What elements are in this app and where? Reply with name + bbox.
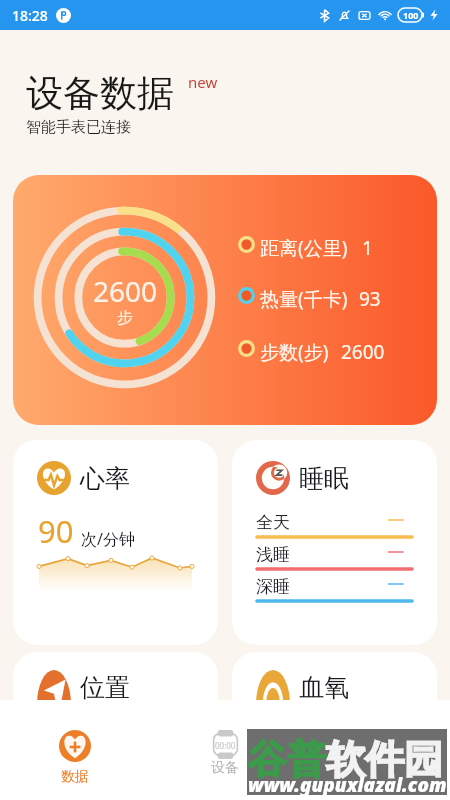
button[interactable]: Blood oxygen — [232, 652, 437, 742]
other: Profile — [359, 730, 391, 762]
staticText: 位置 — [80, 672, 130, 703]
staticText: 90 — [38, 510, 74, 552]
other: Sleep — [256, 461, 290, 495]
staticText: www.gupuxlazal.com — [248, 772, 447, 798]
button[interactable]: Device — [150, 700, 300, 800]
staticText: 2600 — [341, 339, 385, 365]
staticText: 93 — [359, 286, 381, 312]
staticText: 全天 — [256, 512, 290, 533]
staticText: 次/分钟 — [81, 528, 135, 550]
staticText: 心率 — [80, 463, 130, 494]
staticText: 步 — [117, 308, 133, 328]
staticText: 2600 — [93, 272, 158, 310]
button[interactable]: 2600 — [13, 175, 437, 425]
staticText: 热量(千卡) — [260, 286, 348, 312]
other: Device — [209, 728, 242, 761]
other: Heart rate — [37, 461, 71, 495]
staticText: 数据 — [61, 768, 89, 786]
staticText: new — [188, 72, 218, 92]
staticText: 深睡 — [256, 576, 290, 597]
staticText: 1 — [362, 235, 373, 261]
staticText: 智能手表已连接 — [26, 118, 131, 137]
button[interactable]: Location — [13, 652, 218, 742]
staticText: 我的 — [361, 768, 389, 786]
button[interactable]: Sleep — [232, 440, 437, 645]
staticText: 谷普 — [248, 735, 326, 784]
button[interactable]: Heart rate — [13, 440, 218, 645]
staticText: 18:28 — [12, 6, 48, 25]
staticText: 设备数据 — [26, 70, 174, 117]
staticText: 00:00 — [215, 740, 236, 751]
staticText: 距离(公里) — [260, 235, 348, 261]
other: Location — [37, 670, 71, 704]
button[interactable]: 数据 — [0, 700, 150, 800]
staticText: 100 — [403, 9, 419, 21]
staticText: 浅睡 — [256, 544, 290, 565]
staticText: 软件园 — [326, 735, 443, 784]
button[interactable]: Profile — [300, 700, 450, 800]
staticText: 睡眠 — [299, 463, 349, 494]
staticText: 血氧 — [299, 672, 349, 703]
other: Blood oxygen — [256, 670, 290, 704]
staticText: 设备 — [211, 759, 239, 777]
staticText: 步数(步) — [260, 339, 329, 365]
